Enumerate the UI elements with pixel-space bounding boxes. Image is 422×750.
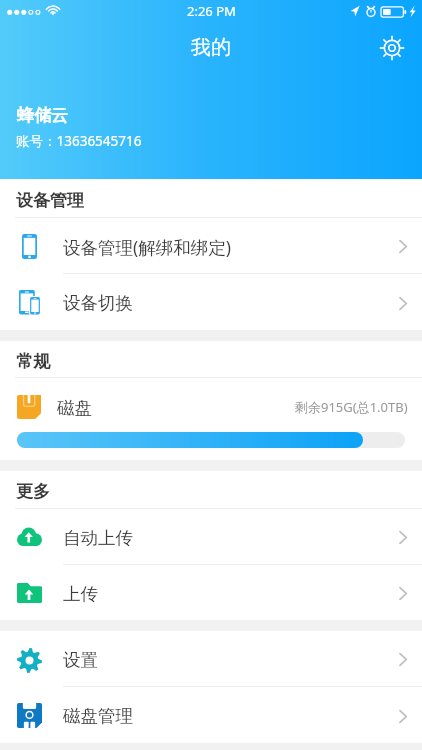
staticText: 设备管理(解绑和绑定) [63,235,231,259]
staticText: 设备管理 [16,190,84,211]
button[interactable]: 设置 [0,631,422,686]
staticText: 磁盘管理 [63,705,133,727]
staticText: 磁盘 [57,397,92,419]
staticText: 2:26 PM [187,2,236,20]
staticText: 更多 [16,481,50,502]
staticText: 我的 [191,35,231,60]
button[interactable]: 自动上传 [0,509,422,564]
staticText: 设备切换 [63,292,133,314]
staticText: 剩余915G(总1.0TB) [295,398,408,416]
staticText: 设置 [63,649,98,671]
staticText: 自动上传 [63,527,133,549]
button[interactable]: 磁盘管理 [0,687,422,743]
staticText: 上传 [63,583,98,605]
staticText: 账号：13636545716 [16,132,142,150]
button[interactable]: 设备管理(解绑和绑定) [0,218,422,273]
staticText: 蜂储云 [17,105,68,126]
button[interactable]: 磁盘 [0,378,422,460]
button[interactable]: 上传 [0,565,422,620]
button[interactable]: 设备切换 [0,274,422,330]
button[interactable]: Settings [370,26,414,70]
staticText: 常规 [16,351,50,372]
